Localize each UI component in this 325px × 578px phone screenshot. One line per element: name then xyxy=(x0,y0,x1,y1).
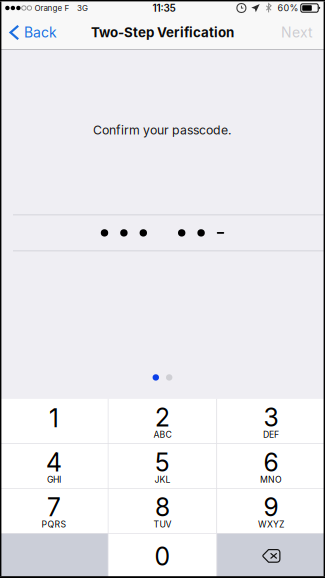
staticText: 4 xyxy=(46,447,62,477)
button[interactable]: 1 xyxy=(0,399,108,443)
staticText: 1 xyxy=(49,403,59,433)
staticText: GHI xyxy=(47,474,61,485)
button[interactable]: 4 xyxy=(0,444,108,488)
staticText: TUV xyxy=(153,519,171,530)
button[interactable]: 0 xyxy=(109,534,216,578)
button[interactable]: 6 xyxy=(217,444,325,488)
staticText: JKL xyxy=(154,474,170,485)
staticText: DEF xyxy=(263,429,279,440)
staticText: 7 xyxy=(47,492,61,522)
staticText: Orange F xyxy=(35,3,70,13)
button[interactable]: 3 xyxy=(217,399,325,443)
staticText: 0 xyxy=(154,541,170,571)
staticText: 3G xyxy=(77,3,88,13)
button[interactable]: Delete xyxy=(217,534,325,578)
button[interactable]: 2 xyxy=(109,399,216,443)
staticText: 8 xyxy=(155,492,170,522)
staticText: PQRS xyxy=(41,519,66,530)
staticText: MNO xyxy=(260,474,282,485)
button[interactable]: 9 xyxy=(217,489,325,533)
staticText: 9 xyxy=(264,492,279,522)
staticText: Confirm your passcode. xyxy=(93,123,232,137)
button[interactable]: 5 xyxy=(109,444,216,488)
staticText: 3 xyxy=(264,402,279,432)
staticText: 11:35 xyxy=(153,2,176,14)
staticText: WXYZ xyxy=(258,519,284,530)
staticText: Back xyxy=(24,24,57,41)
button[interactable]: Next xyxy=(271,16,325,49)
staticText: 2 xyxy=(155,402,170,432)
button[interactable]: 8 xyxy=(109,489,216,533)
button[interactable]: 7 xyxy=(0,489,108,533)
staticText: 60% xyxy=(277,2,298,13)
staticText: ABC xyxy=(153,429,171,440)
staticText: 5 xyxy=(155,447,170,477)
button[interactable]: Back xyxy=(0,16,67,49)
staticText: Two-Step Verification xyxy=(91,24,234,40)
staticText: 6 xyxy=(264,447,279,477)
staticText: Next xyxy=(281,24,313,41)
